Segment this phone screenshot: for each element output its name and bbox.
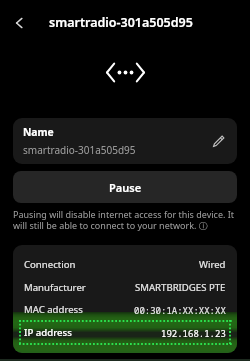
staticText: Name — [23, 125, 54, 139]
button[interactable]: Manufacturer — [13, 276, 237, 299]
staticText: Connection — [24, 258, 76, 271]
staticText: Pause — [109, 180, 142, 195]
button[interactable]: MAC address — [13, 298, 237, 321]
staticText: SMARTBRIDGES PTE — [135, 281, 226, 294]
staticText: 00:30:1A:XX:XX:XX — [134, 304, 226, 316]
staticText: smartradio-301a505d95 — [23, 143, 136, 157]
staticText: Manufacturer — [24, 281, 86, 294]
staticText: Wired — [199, 258, 226, 271]
button[interactable]: Edit name — [207, 129, 231, 153]
button[interactable]: IP address — [13, 321, 237, 344]
staticText: IP address — [24, 326, 72, 339]
button[interactable]: Name — [13, 118, 237, 164]
staticText: Pausing will disable internet access for… — [13, 208, 237, 232]
staticText: 192.168.1.23 — [161, 327, 226, 339]
staticText: MAC address — [24, 303, 83, 316]
button[interactable]: Connection — [13, 253, 237, 276]
staticText: smartradio-301a505d95 — [49, 14, 193, 31]
button[interactable]: Pause — [13, 171, 237, 203]
button[interactable]: Back — [4, 8, 33, 37]
